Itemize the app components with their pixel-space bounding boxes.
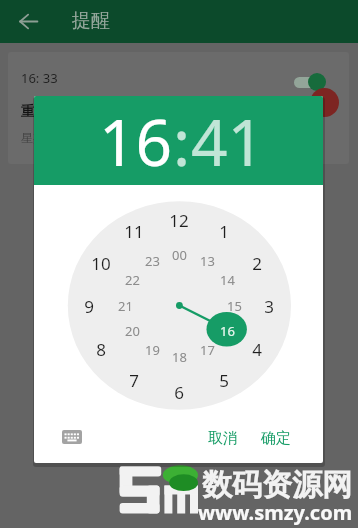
staticText: 10 xyxy=(91,252,111,275)
staticText: 确定 xyxy=(261,429,291,448)
staticText: 9 xyxy=(84,295,94,318)
staticText: www.smzy.com xyxy=(198,499,353,526)
staticText: 18 xyxy=(172,348,187,366)
button[interactable]: 确定 xyxy=(261,429,291,448)
staticText: : xyxy=(173,98,191,185)
staticText: 21 xyxy=(118,297,133,315)
button[interactable]: Keyboard input xyxy=(54,425,90,449)
staticText: 23 xyxy=(145,252,160,270)
staticText: 重: xyxy=(21,101,39,120)
staticText: 15 xyxy=(227,297,242,315)
staticText: 19 xyxy=(145,341,160,359)
staticText: 16: 33 xyxy=(21,69,58,87)
staticText: 1 xyxy=(219,220,229,243)
staticText: 提醒 xyxy=(72,9,110,33)
staticText: 20 xyxy=(125,322,140,340)
staticText: 6 xyxy=(174,381,184,404)
staticText: 7 xyxy=(129,369,139,392)
staticText: 16 xyxy=(220,322,235,340)
staticText: 5 xyxy=(219,369,229,392)
staticText: 11 xyxy=(124,220,144,243)
staticText: 00 xyxy=(172,246,187,264)
staticText: 17 xyxy=(200,341,215,359)
staticText: 3 xyxy=(264,295,274,318)
staticText: 4 xyxy=(252,338,262,361)
staticText: 8 xyxy=(96,338,106,361)
staticText: 12 xyxy=(169,209,189,232)
staticText: 13 xyxy=(200,252,215,270)
staticText: 数码资源网 xyxy=(202,466,352,504)
button[interactable]: Back xyxy=(11,4,45,38)
staticText: 14 xyxy=(220,271,235,289)
staticText: 取消 xyxy=(208,429,238,448)
staticText: 2 xyxy=(252,252,262,275)
staticText: 41 xyxy=(191,98,265,185)
staticText: 22 xyxy=(125,271,140,289)
button[interactable]: 取消 xyxy=(208,429,238,448)
staticText: 16 xyxy=(99,98,173,185)
staticText: 星期 xyxy=(21,130,45,145)
